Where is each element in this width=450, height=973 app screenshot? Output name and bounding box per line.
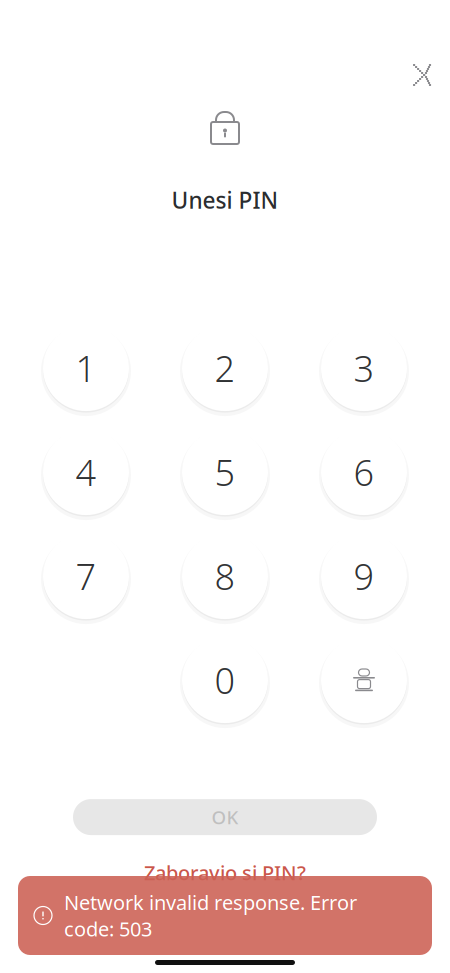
staticText: Zaboravio si PIN? bbox=[144, 859, 306, 886]
staticText: 8 bbox=[214, 552, 235, 600]
button[interactable]: 3 bbox=[321, 325, 407, 411]
staticText: 9 bbox=[353, 552, 374, 600]
staticText: Network invalid response. Error code: 50… bbox=[64, 889, 357, 942]
button[interactable]: 1 bbox=[43, 325, 129, 411]
button[interactable]: 7 bbox=[43, 533, 129, 619]
staticText: 4 bbox=[75, 448, 96, 496]
staticText: 7 bbox=[75, 552, 96, 600]
staticText: Unesi PIN bbox=[171, 185, 278, 215]
staticText: 2 bbox=[214, 344, 235, 392]
button[interactable]: 8 bbox=[182, 533, 268, 619]
button[interactable]: 2 bbox=[182, 325, 268, 411]
button[interactable]: Close bbox=[402, 53, 446, 97]
button[interactable]: Zaboravio si PIN? bbox=[144, 859, 306, 886]
staticText: 1 bbox=[75, 344, 96, 392]
button[interactable]: 9 bbox=[321, 533, 407, 619]
button[interactable]: Biometric unlock bbox=[321, 637, 407, 723]
staticText: 0 bbox=[214, 656, 235, 704]
button[interactable]: 6 bbox=[321, 429, 407, 515]
staticText: 5 bbox=[214, 448, 235, 496]
button[interactable]: OK bbox=[73, 799, 377, 835]
button[interactable]: 0 bbox=[182, 637, 268, 723]
staticText: 3 bbox=[353, 344, 374, 392]
button[interactable]: 4 bbox=[43, 429, 129, 515]
staticText: 6 bbox=[353, 448, 374, 496]
button[interactable]: 5 bbox=[182, 429, 268, 515]
staticText: OK bbox=[211, 805, 238, 829]
